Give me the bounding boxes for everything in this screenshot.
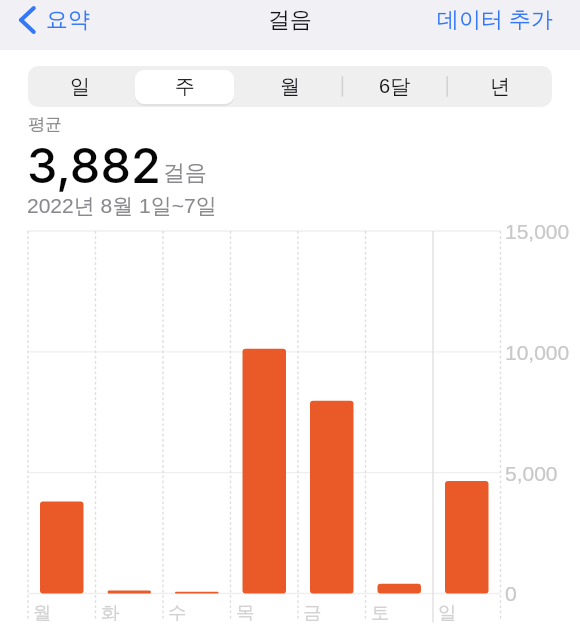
button[interactable]: 주 xyxy=(132,66,237,107)
staticText: 수 xyxy=(168,601,187,624)
button[interactable]: 일 xyxy=(28,66,132,107)
staticText: 10,000 xyxy=(505,341,570,364)
staticText: 년 xyxy=(490,74,510,99)
staticText: 월 xyxy=(280,74,300,99)
staticText: 월 xyxy=(33,601,52,624)
staticText: 요약 xyxy=(46,6,90,34)
staticText: 3,882 xyxy=(27,136,161,195)
staticText: 2022년 8월 1일~7일 xyxy=(27,193,217,219)
staticText: 6달 xyxy=(379,74,411,99)
staticText: 15,000 xyxy=(505,220,570,243)
staticText: 0 xyxy=(505,582,517,605)
button[interactable]: Back xyxy=(17,5,90,35)
staticText: 걸음 xyxy=(163,159,207,187)
staticText: 데이터 추가 xyxy=(437,6,554,34)
staticText: 걸음 xyxy=(268,6,312,34)
button[interactable]: 월 xyxy=(237,66,342,107)
staticText: 평균 xyxy=(28,114,62,135)
staticText: 금 xyxy=(303,601,322,624)
staticText: 목 xyxy=(236,601,255,624)
button[interactable]: 년 xyxy=(447,66,552,107)
other: Back xyxy=(17,5,37,35)
staticText: 토 xyxy=(371,601,390,624)
staticText: 일 xyxy=(438,601,457,624)
button[interactable]: 6달 xyxy=(342,66,447,107)
staticText: 주 xyxy=(175,74,195,99)
staticText: 5,000 xyxy=(505,462,558,485)
button[interactable]: 데이터 추가 xyxy=(437,6,554,34)
staticText: 화 xyxy=(101,601,120,624)
staticText: 일 xyxy=(70,74,90,99)
